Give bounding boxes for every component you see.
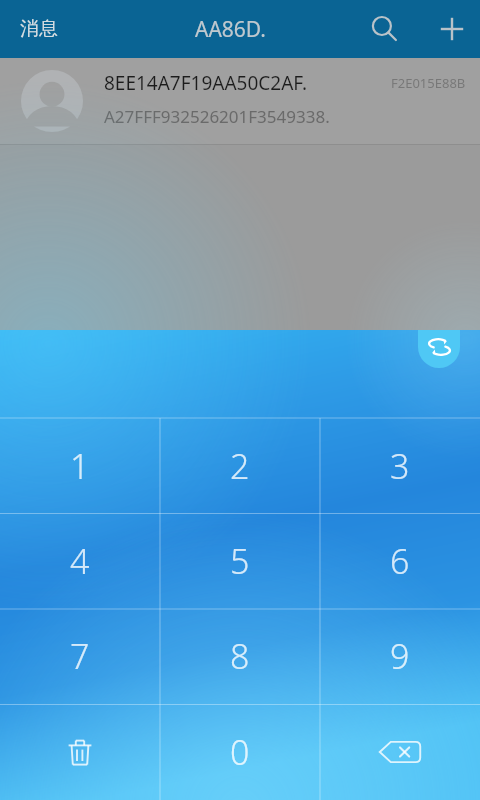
staticText: 7	[70, 633, 90, 679]
staticText: 8EE14A7F19AA50C2AF.	[104, 70, 308, 96]
button[interactable]: Clear	[0, 704, 160, 800]
staticText: 2	[230, 443, 250, 489]
staticText: F2E015E88B	[391, 74, 466, 92]
staticText: 0	[230, 729, 250, 775]
button[interactable]: 0	[160, 704, 320, 800]
button[interactable]: 3	[320, 418, 480, 513]
staticText: 4	[70, 538, 90, 584]
button[interactable]: 8	[160, 608, 320, 704]
staticText: 9	[390, 633, 410, 679]
button[interactable]: 8EE14A7F19AA50C2AF.	[0, 58, 480, 145]
button[interactable]: 5	[160, 513, 320, 608]
staticText: 5	[230, 538, 250, 584]
staticText: 6	[390, 538, 410, 584]
staticText: 8	[230, 633, 250, 679]
staticText: 消息	[20, 17, 58, 41]
button[interactable]: 6	[320, 513, 480, 608]
staticText: 3	[390, 443, 410, 489]
button[interactable]: 1	[0, 418, 160, 513]
button[interactable]: 9	[320, 608, 480, 704]
button[interactable]: Backspace	[320, 704, 480, 800]
staticText: AA86D.	[195, 15, 266, 44]
staticText: 1	[70, 443, 90, 489]
button[interactable]: 2	[160, 418, 320, 513]
button[interactable]: Search	[358, 3, 410, 55]
button[interactable]: Switch input	[418, 330, 460, 368]
button[interactable]: 7	[0, 608, 160, 704]
button[interactable]: 消息	[10, 11, 68, 47]
staticText: A27FFF932526201F3549338.	[104, 105, 330, 128]
button[interactable]: Add	[424, 1, 480, 57]
button[interactable]: 4	[0, 513, 160, 608]
